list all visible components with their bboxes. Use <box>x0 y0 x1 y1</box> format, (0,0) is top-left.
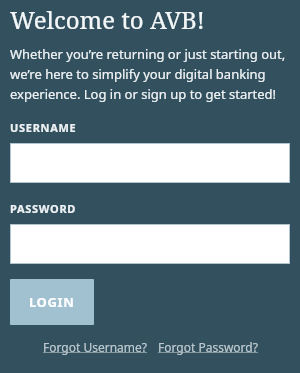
staticText: Welcome to AVB! <box>10 3 205 36</box>
staticText: Forgot Username? <box>43 339 148 355</box>
button[interactable]: Username input <box>10 143 290 183</box>
staticText: Forgot Password? <box>158 339 258 355</box>
staticText: LOGIN <box>29 293 75 311</box>
staticText: Whether you’re returning or just startin… <box>10 45 290 103</box>
staticText: PASSWORD <box>10 201 77 216</box>
staticText: USERNAME <box>10 120 77 135</box>
button[interactable]: Password input <box>10 224 290 264</box>
button[interactable]: Forgot Username? <box>43 339 148 355</box>
button[interactable]: Forgot Password? <box>158 339 258 355</box>
button[interactable]: LOGIN <box>10 279 94 325</box>
